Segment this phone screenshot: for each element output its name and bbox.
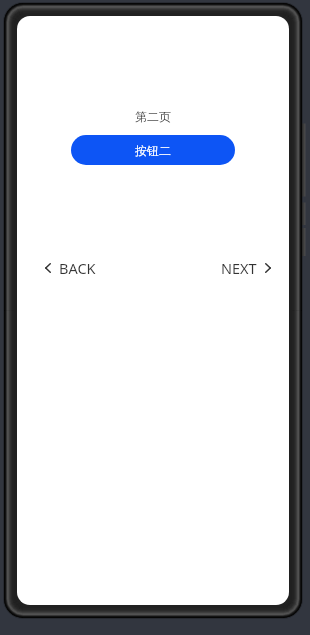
staticText: 按钮二 [135, 143, 171, 158]
button[interactable]: Back [39, 253, 102, 283]
staticText: BACK [59, 258, 96, 278]
button[interactable]: 按钮二 [71, 135, 235, 165]
staticText: NEXT [221, 258, 257, 278]
button[interactable]: Next [215, 253, 277, 283]
staticText: 第二页 [17, 109, 289, 124]
